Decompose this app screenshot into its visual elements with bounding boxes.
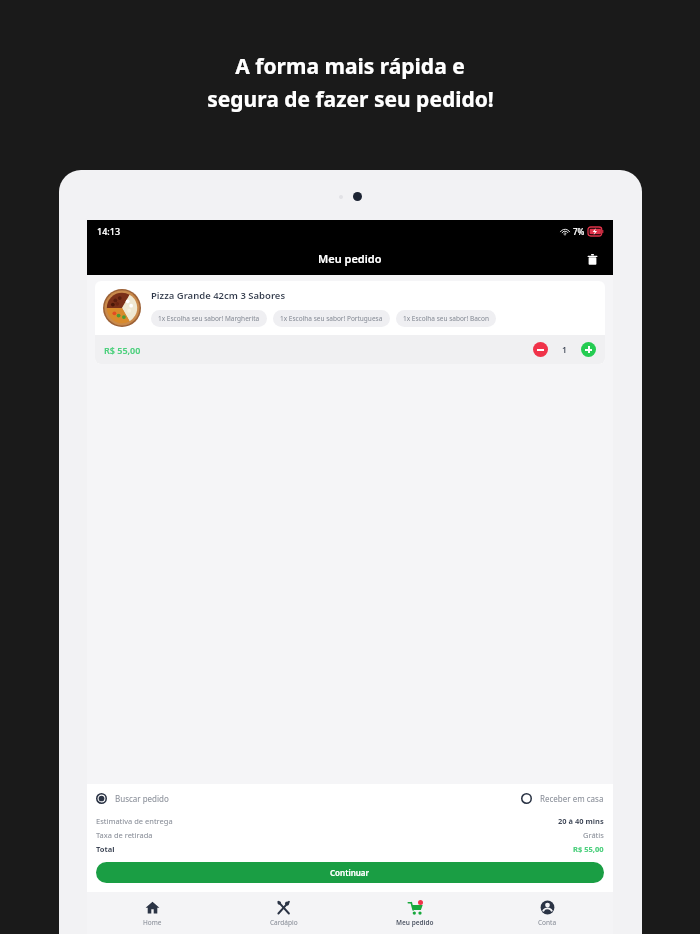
staticText: 14:13	[97, 225, 121, 237]
staticText: Buscar pedido	[115, 793, 169, 804]
staticText: 1x Escolha seu sabor! Bacon	[403, 314, 489, 323]
staticText: Taxa de retirada	[96, 830, 153, 840]
staticText: Total	[96, 844, 115, 854]
staticText: 1x Escolha seu sabor! Portuguesa	[280, 314, 383, 323]
button[interactable]: Home	[87, 892, 218, 934]
staticText: 1	[562, 344, 567, 356]
button[interactable]: Cardápio	[218, 892, 349, 934]
button[interactable]: Receber em casa	[521, 793, 604, 804]
staticText: Grátis	[583, 830, 604, 840]
staticText: Home	[143, 918, 162, 927]
button[interactable]: Decrease quantity	[533, 342, 548, 357]
button[interactable]: Continuar	[96, 862, 604, 883]
button[interactable]: Buscar pedido	[96, 793, 169, 804]
button[interactable]: 1x Escolha seu sabor! Bacon	[396, 310, 496, 327]
staticText: segura de fazer seu pedido!	[207, 85, 494, 114]
staticText: Meu pedido	[396, 918, 434, 927]
staticText: Meu pedido	[318, 251, 382, 266]
button[interactable]: Conta	[481, 892, 613, 934]
staticText: Estimativa de entrega	[96, 816, 173, 826]
staticText: Continuar	[330, 867, 370, 878]
staticText: Conta	[538, 918, 557, 927]
staticText: 7%	[573, 226, 585, 237]
button[interactable]: Increase quantity	[581, 342, 596, 357]
button[interactable]: 1x Escolha seu sabor! Portuguesa	[273, 310, 390, 327]
staticText: Pizza Grande 42cm 3 Sabores	[151, 289, 286, 302]
button[interactable]: 1x Escolha seu sabor! Margherita	[151, 310, 267, 327]
staticText: Receber em casa	[540, 793, 604, 804]
staticText: R$ 55,00	[104, 344, 141, 356]
staticText: A forma mais rápida e	[235, 52, 465, 81]
staticText: 1x Escolha seu sabor! Margherita	[158, 314, 260, 323]
staticText: R$ 55,00	[573, 844, 604, 854]
button[interactable]: Meu pedido	[349, 892, 481, 934]
button[interactable]: Delete order	[579, 246, 605, 272]
button[interactable]: Pizza Grande 42cm 3 Sabores	[95, 281, 605, 364]
staticText: 20 à 40 mins	[558, 816, 604, 826]
staticText: Cardápio	[270, 918, 298, 927]
